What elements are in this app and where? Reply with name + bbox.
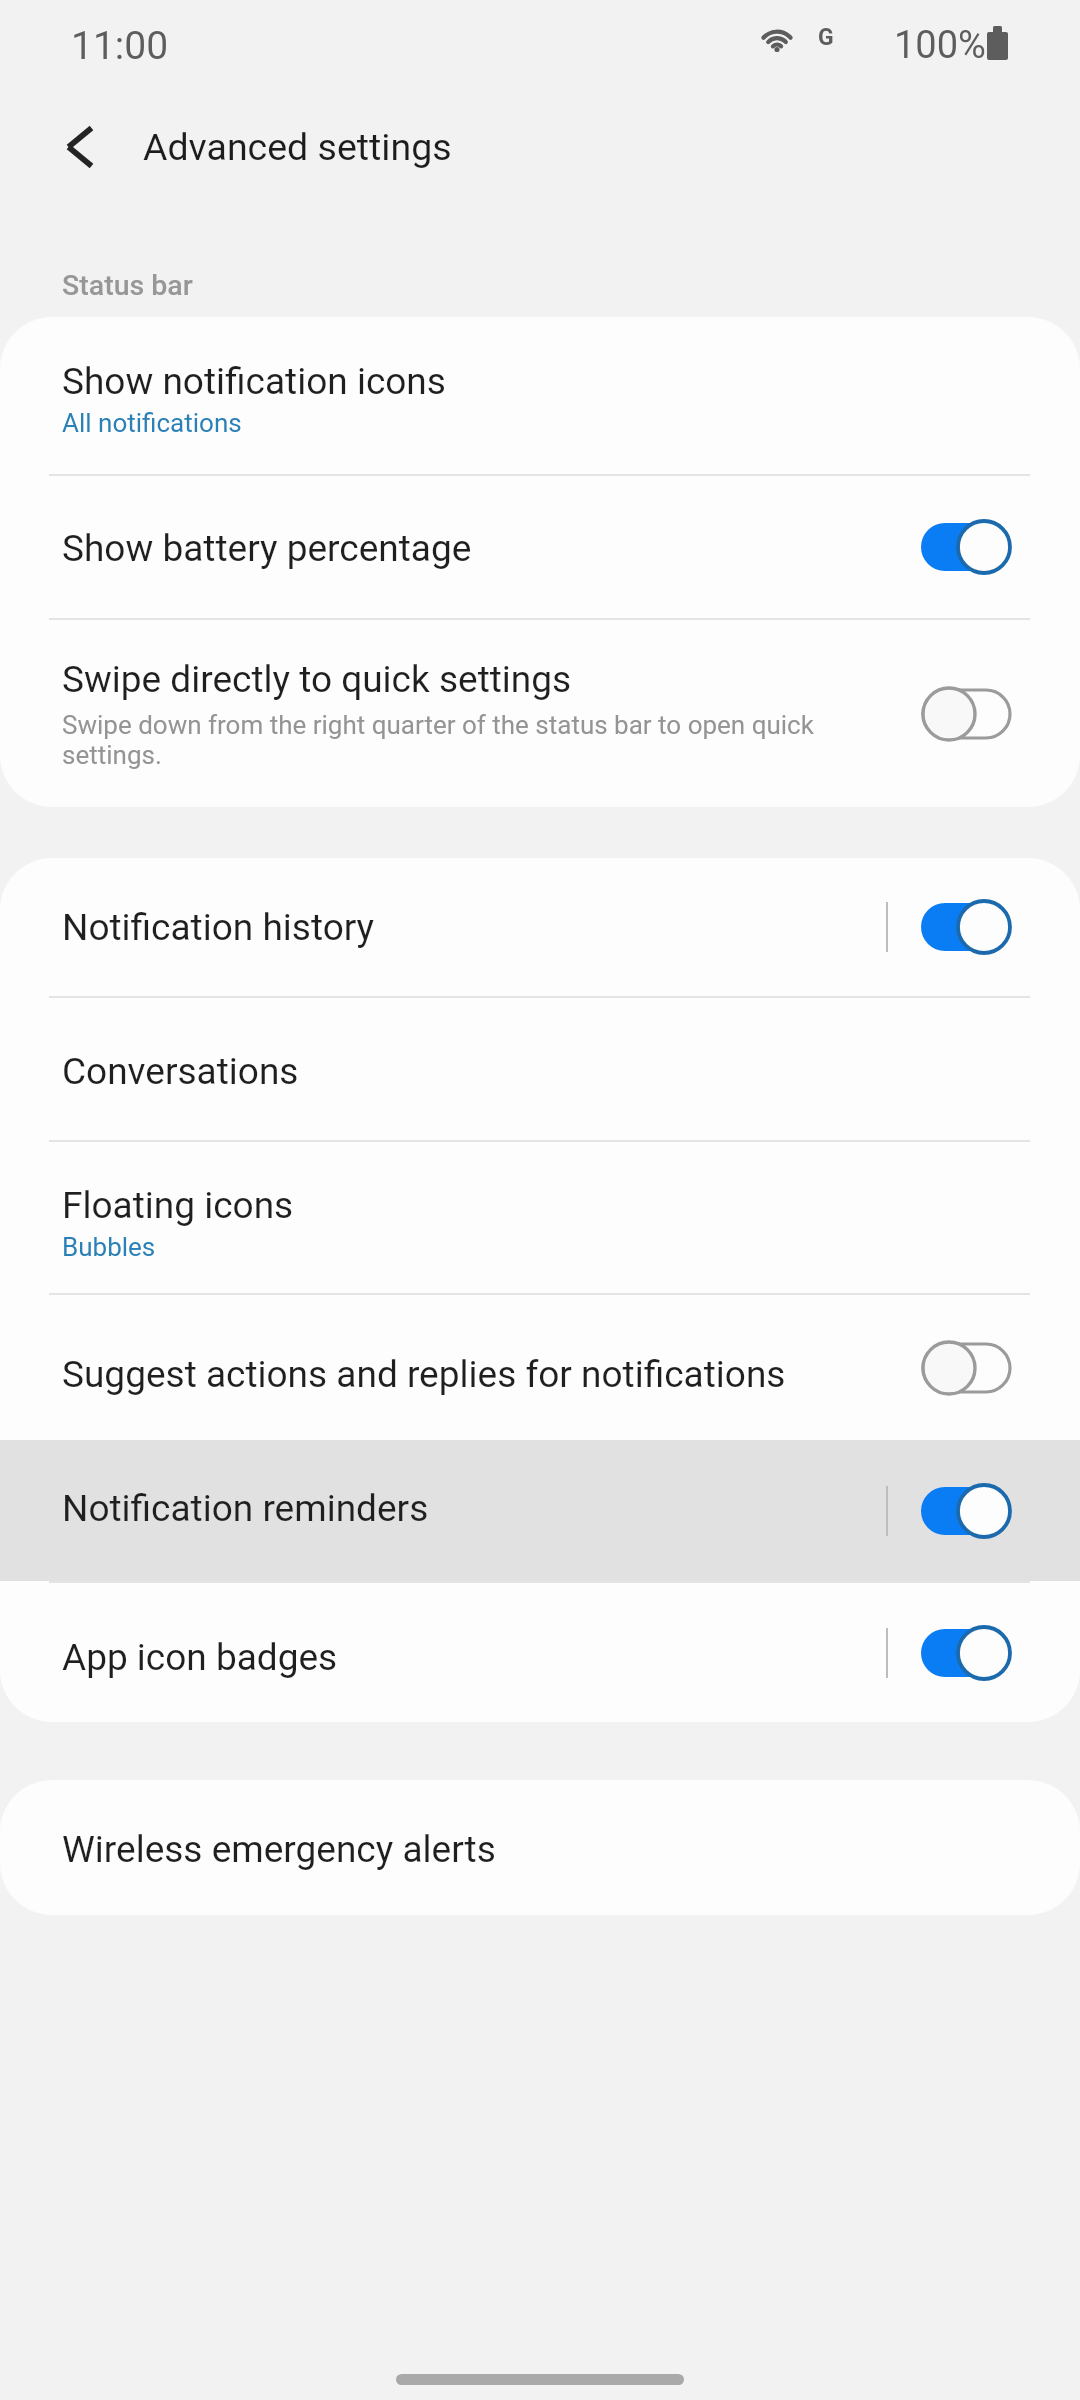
staticText: 100% xyxy=(894,23,986,68)
button[interactable]: Switch on xyxy=(921,891,1012,963)
staticText: Bubbles xyxy=(62,1232,156,1262)
staticText: Advanced settings xyxy=(143,125,452,169)
button[interactable]: Switch on xyxy=(921,511,1012,583)
button[interactable]: Wireless emergency alerts xyxy=(0,1780,1080,1915)
staticText: Suggest actions and replies for notifica… xyxy=(62,1352,786,1396)
staticText: Conversations xyxy=(62,1049,299,1093)
staticText: Show battery percentage xyxy=(62,526,472,570)
button[interactable]: App icon badges xyxy=(0,1583,1080,1722)
button[interactable]: Switch off xyxy=(921,678,1012,750)
button[interactable]: Floating icons xyxy=(0,1142,1080,1293)
staticText: Show notification icons xyxy=(62,359,446,403)
staticText: Notification reminders xyxy=(62,1486,429,1530)
button[interactable]: Show battery percentage xyxy=(0,476,1080,618)
button[interactable]: Conversations xyxy=(0,998,1080,1140)
button[interactable]: Switch off xyxy=(921,1332,1012,1404)
staticText: Notification history xyxy=(62,905,375,949)
button[interactable]: Back xyxy=(34,110,126,202)
button[interactable]: Suggest actions and replies for notifica… xyxy=(0,1295,1080,1440)
staticText: Wireless emergency alerts xyxy=(62,1827,496,1871)
staticText: App icon badges xyxy=(62,1635,338,1679)
button[interactable]: Switch on xyxy=(921,1617,1012,1689)
staticText: Swipe down from the right quarter of the… xyxy=(62,710,880,770)
button[interactable]: Show notification icons xyxy=(0,317,1080,474)
staticText: Swipe directly to quick settings xyxy=(62,657,572,701)
button[interactable]: Notification history xyxy=(0,858,1080,996)
staticText: G xyxy=(818,24,834,51)
staticText: All notifications xyxy=(62,408,242,438)
staticText: Status bar xyxy=(62,269,193,302)
button[interactable]: Swipe directly to quick settings xyxy=(0,620,1080,807)
button[interactable]: Notification reminders xyxy=(0,1440,1080,1581)
button[interactable]: Switch on xyxy=(921,1475,1012,1547)
staticText: 11:00 xyxy=(71,23,169,69)
staticText: Floating icons xyxy=(62,1183,294,1227)
